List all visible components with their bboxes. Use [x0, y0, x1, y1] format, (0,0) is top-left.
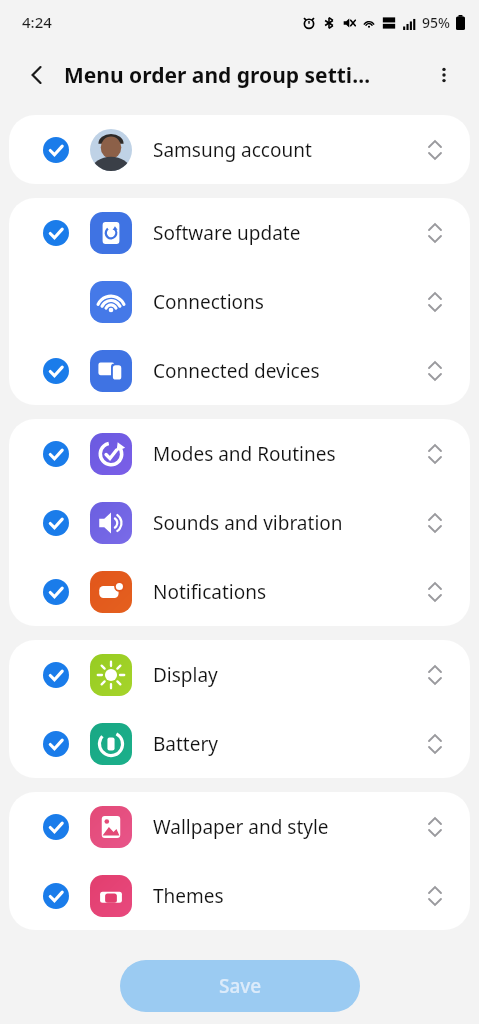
button[interactable]: Notifications	[9, 557, 470, 626]
staticText: Connected devices	[153, 358, 422, 384]
button[interactable]: More options	[429, 60, 459, 90]
staticText: Wallpaper and style	[153, 814, 422, 840]
button[interactable]: Reorder Modes and Routines	[422, 439, 448, 469]
button[interactable]: Display	[9, 640, 470, 709]
button[interactable]: Connected devices	[9, 336, 470, 405]
staticText: Battery	[153, 731, 422, 757]
staticText: Notifications	[153, 579, 422, 605]
button[interactable]: Battery	[9, 709, 470, 778]
staticText: Modes and Routines	[153, 441, 422, 467]
button[interactable]: Modes and Routines	[9, 419, 470, 488]
staticText: Themes	[153, 883, 422, 909]
button[interactable]: Themes	[9, 861, 470, 930]
button[interactable]: Reorder Battery	[422, 729, 448, 759]
button[interactable]: Reorder Connections	[422, 287, 448, 317]
button[interactable]: Reorder Notifications	[422, 577, 448, 607]
button[interactable]: Reorder Connected devices	[422, 356, 448, 386]
staticText: Samsung account	[153, 137, 422, 163]
button[interactable]: Software update	[9, 198, 470, 267]
button[interactable]: Reorder Sounds and vibration	[422, 508, 448, 538]
button[interactable]: Reorder Themes	[422, 881, 448, 911]
staticText: Save	[219, 973, 262, 999]
button[interactable]: Reorder Display	[422, 660, 448, 690]
staticText: Sounds and vibration	[153, 510, 422, 536]
button[interactable]: Reorder Software update	[422, 218, 448, 248]
staticText: Display	[153, 662, 422, 688]
button[interactable]: Samsung account	[9, 115, 470, 184]
staticText: Connections	[153, 289, 422, 315]
staticText: Software update	[153, 220, 422, 246]
button[interactable]: Sounds and vibration	[9, 488, 470, 557]
staticText: 95%	[422, 13, 450, 32]
button[interactable]: Connections	[9, 267, 470, 336]
staticText: 4:24	[22, 12, 52, 32]
button[interactable]: Reorder Samsung account	[422, 135, 448, 165]
button[interactable]: Save	[120, 960, 360, 1012]
staticText: Menu order and group setti…	[64, 61, 429, 90]
button[interactable]: Reorder Wallpaper and style	[422, 812, 448, 842]
button[interactable]: Wallpaper and style	[9, 792, 470, 861]
button[interactable]: Back	[22, 60, 52, 90]
